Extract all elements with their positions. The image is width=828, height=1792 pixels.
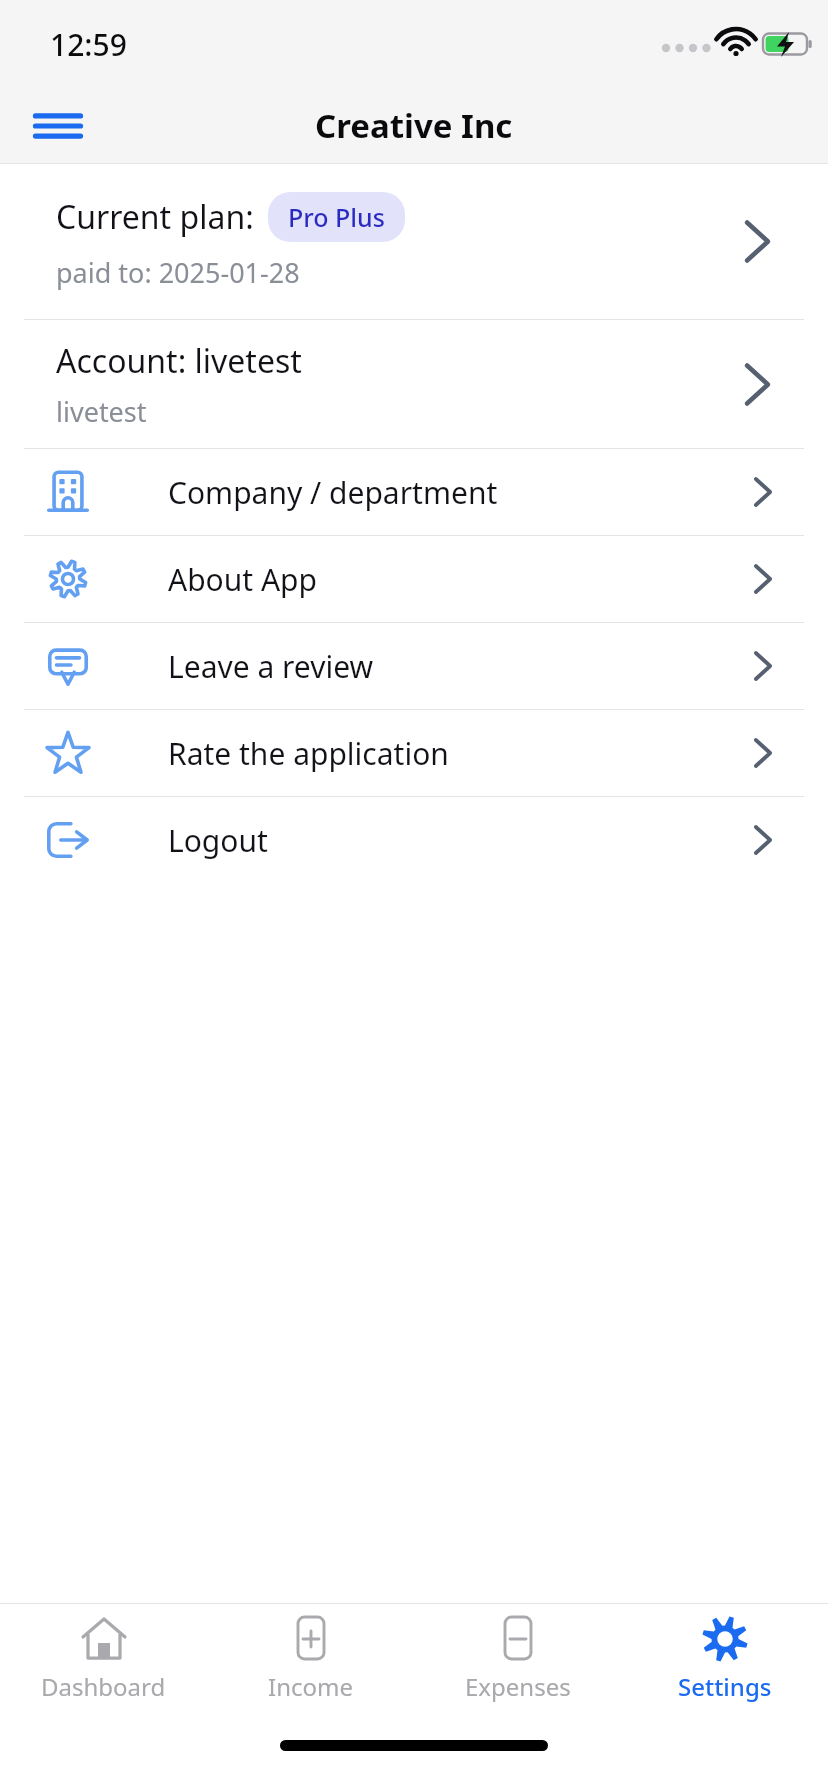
button[interactable]: Leave a review — [0, 623, 828, 709]
button[interactable]: Logout — [0, 797, 828, 883]
button[interactable]: Account: livetest — [0, 320, 828, 448]
staticText: Company / department — [168, 472, 498, 513]
staticText: Account: livetest — [56, 339, 302, 383]
button[interactable]: Rate the application — [0, 710, 828, 796]
staticText: Pro Plus — [288, 200, 385, 234]
staticText: Leave a review — [168, 646, 374, 687]
staticText: Expenses — [465, 1670, 571, 1703]
staticText: Current plan: — [56, 195, 254, 239]
button[interactable]: Company / department — [0, 449, 828, 535]
button[interactable]: Current plan: — [0, 164, 828, 319]
staticText: 12:59 — [50, 24, 127, 65]
staticText: About App — [168, 559, 318, 600]
staticText: Rate the application — [168, 733, 449, 774]
staticText: Dashboard — [41, 1670, 166, 1703]
staticText: Creative Inc — [315, 103, 513, 148]
button[interactable]: Expenses — [414, 1604, 621, 1712]
staticText: Logout — [168, 820, 268, 861]
button[interactable]: Income — [207, 1604, 414, 1712]
staticText: Income — [268, 1670, 353, 1703]
staticText: Settings — [678, 1670, 772, 1703]
staticText: paid to: 2025-01-28 — [56, 254, 300, 291]
button[interactable]: Dashboard — [0, 1604, 207, 1712]
staticText: livetest — [56, 393, 147, 430]
button[interactable]: Settings — [621, 1604, 828, 1712]
button[interactable]: Open navigation menu — [28, 96, 88, 156]
button[interactable]: About App — [0, 536, 828, 622]
